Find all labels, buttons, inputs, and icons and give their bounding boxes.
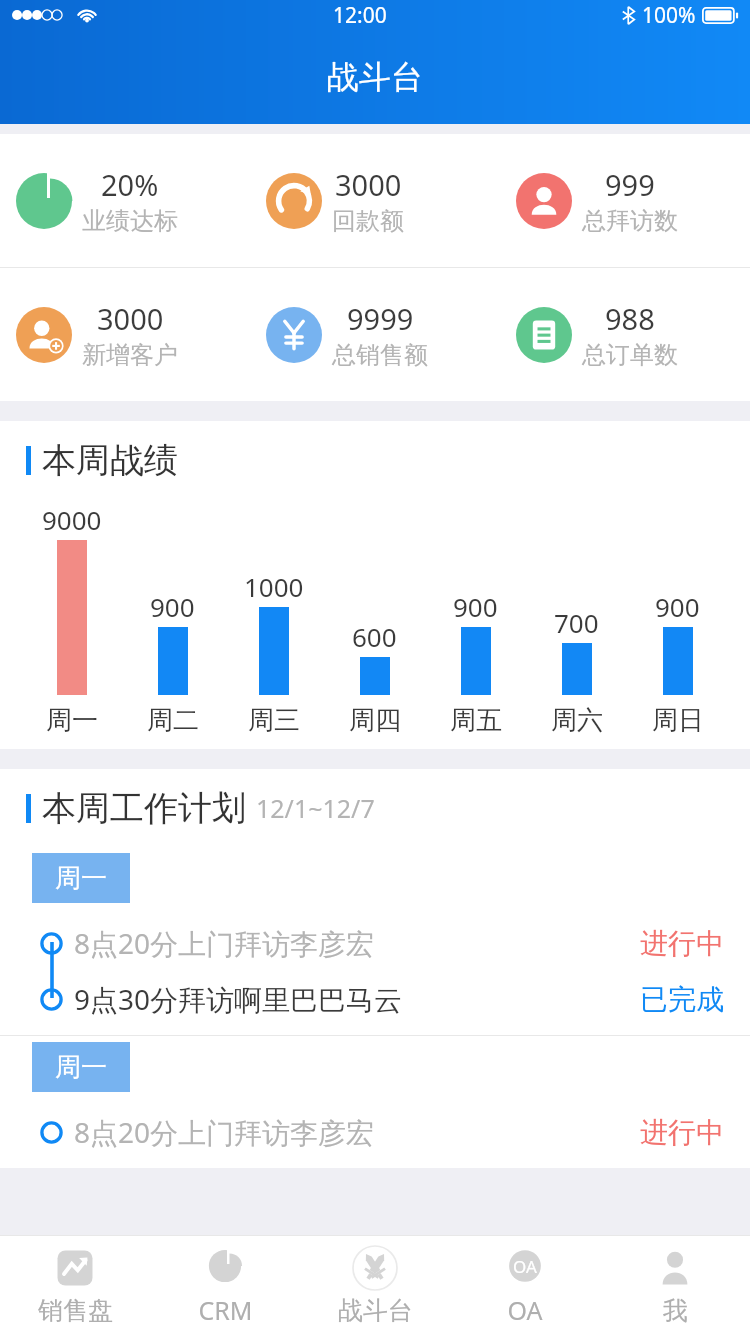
staticText: 本周战绩 <box>42 439 178 482</box>
staticText: 周三 <box>248 704 300 737</box>
staticText: 周五 <box>450 704 502 737</box>
staticText: 900 <box>150 589 195 624</box>
button[interactable]: 我 <box>600 1236 750 1334</box>
staticText: 12:00 <box>333 1 387 30</box>
staticText: 988 <box>605 299 655 338</box>
staticText: 周一 <box>55 1051 107 1084</box>
button[interactable]: OA <box>450 1236 600 1334</box>
staticText: 周二 <box>147 704 199 737</box>
staticText: 900 <box>453 589 498 624</box>
button[interactable]: 周一 <box>32 853 130 903</box>
button[interactable]: 销售盘 <box>0 1236 150 1334</box>
staticText: 20% <box>101 165 159 204</box>
staticText: 总拜访数 <box>582 206 678 236</box>
staticText: 我 <box>663 1295 688 1326</box>
staticText: 本周工作计划 <box>42 787 246 830</box>
staticText: 进行中 <box>640 926 724 961</box>
staticText: 9点30分拜访啊里巴巴马云 <box>74 980 403 1018</box>
staticText: 已完成 <box>640 982 724 1017</box>
staticText: 新增客户 <box>82 340 178 370</box>
staticText: 回款额 <box>332 206 404 236</box>
staticText: 600 <box>352 619 397 654</box>
button[interactable]: 周一 <box>32 1042 130 1092</box>
staticText: 战斗台 <box>327 57 423 97</box>
staticText: CRM <box>198 1293 253 1327</box>
button[interactable]: 20% <box>0 134 250 267</box>
staticText: 9000 <box>42 502 102 537</box>
staticText: 周四 <box>349 704 401 737</box>
staticText: OA <box>507 1293 543 1327</box>
staticText: 8点20分上门拜访李彦宏 <box>74 924 375 962</box>
staticText: 9999 <box>347 299 414 338</box>
staticText: 总订单数 <box>582 340 678 370</box>
button[interactable]: 战斗台 <box>300 1236 450 1334</box>
staticText: 3000 <box>335 165 402 204</box>
staticText: 总销售额 <box>332 340 428 370</box>
staticText: 周一 <box>46 704 98 737</box>
staticText: 销售盘 <box>38 1295 113 1326</box>
staticText: 进行中 <box>640 1115 724 1150</box>
button[interactable]: 9点30分拜访啊里巴巴马云 <box>0 971 750 1027</box>
button[interactable]: 988 <box>500 268 750 401</box>
staticText: 周一 <box>55 862 107 895</box>
button[interactable]: 8点20分上门拜访李彦宏 <box>0 1104 750 1160</box>
staticText: OA <box>513 1255 537 1278</box>
staticText: 100% <box>642 1 696 30</box>
staticText: 业绩达标 <box>82 206 178 236</box>
staticText: 999 <box>605 165 655 204</box>
staticText: 周日 <box>652 704 704 737</box>
staticText: 3000 <box>97 299 164 338</box>
button[interactable]: 3000 <box>0 268 250 401</box>
button[interactable]: CRM <box>150 1236 300 1334</box>
button[interactable]: 9999 <box>250 268 500 401</box>
staticText: 8点20分上门拜访李彦宏 <box>74 1113 375 1151</box>
staticText: 周六 <box>551 704 603 737</box>
staticText: 12/1~12/7 <box>256 791 375 825</box>
staticText: 战斗台 <box>338 1295 413 1326</box>
staticText: 700 <box>554 605 599 640</box>
button[interactable]: 999 <box>500 134 750 267</box>
staticText: 900 <box>655 589 700 624</box>
button[interactable]: 8点20分上门拜访李彦宏 <box>0 915 750 971</box>
staticText: 1000 <box>244 569 304 604</box>
button[interactable]: 3000 <box>250 134 500 267</box>
